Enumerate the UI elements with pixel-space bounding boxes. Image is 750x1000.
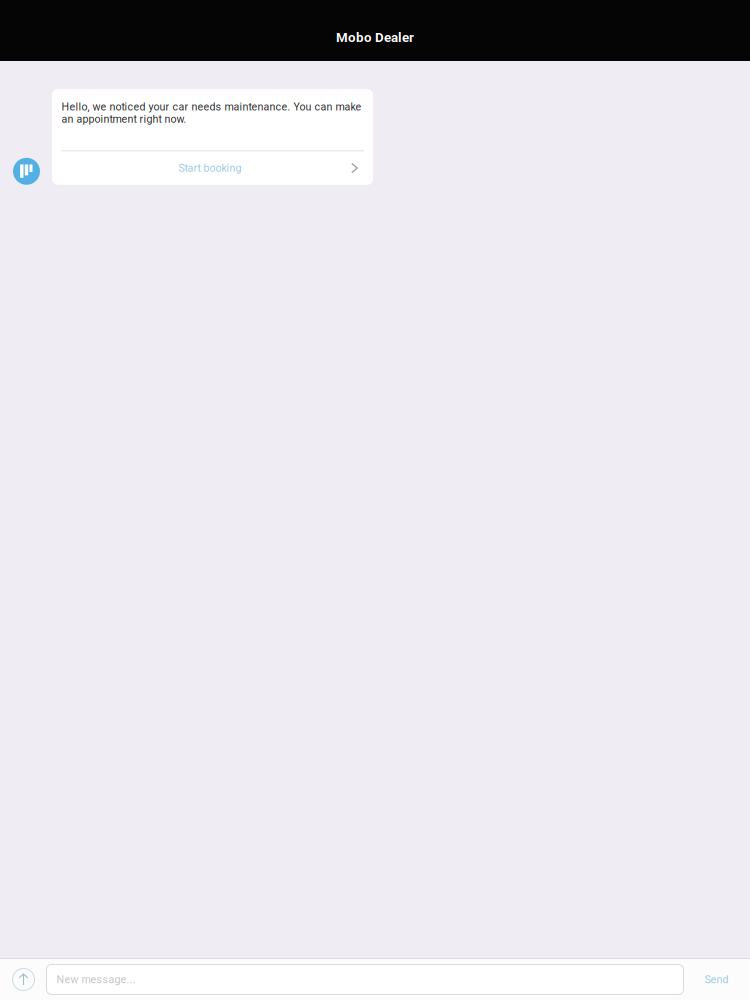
button[interactable]: Send <box>683 959 749 1000</box>
staticText: New message... <box>56 973 135 986</box>
staticText: Hello, we noticed your car needs mainten… <box>61 100 361 125</box>
button[interactable]: Attach <box>11 967 35 991</box>
staticText: Start booking <box>179 162 242 174</box>
button[interactable]: Start booking <box>52 151 373 185</box>
staticText: Mobo Dealer <box>336 30 414 45</box>
staticText: Send <box>704 973 728 986</box>
button[interactable]: New message... <box>46 964 683 994</box>
